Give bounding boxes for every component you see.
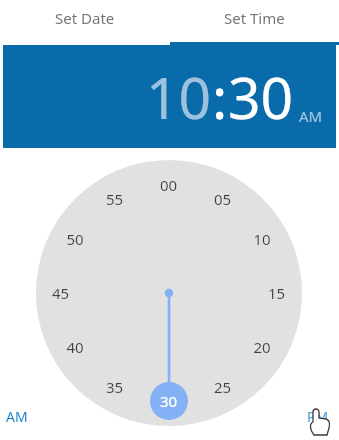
staticText: PM xyxy=(307,407,329,426)
button[interactable]: AM xyxy=(299,106,323,126)
staticText: Set Date xyxy=(55,8,115,28)
button[interactable]: 30 xyxy=(228,58,294,136)
button[interactable]: AM xyxy=(6,407,28,426)
staticText: AM xyxy=(6,407,28,426)
staticText: Set Time xyxy=(224,8,285,28)
button[interactable]: Minute dial xyxy=(0,0,339,440)
button[interactable]: Set Time xyxy=(169,0,339,45)
staticText: : xyxy=(212,58,228,136)
button[interactable]: Set Date xyxy=(0,0,169,45)
button[interactable]: PM xyxy=(307,407,329,426)
button[interactable]: 10 xyxy=(146,58,212,136)
